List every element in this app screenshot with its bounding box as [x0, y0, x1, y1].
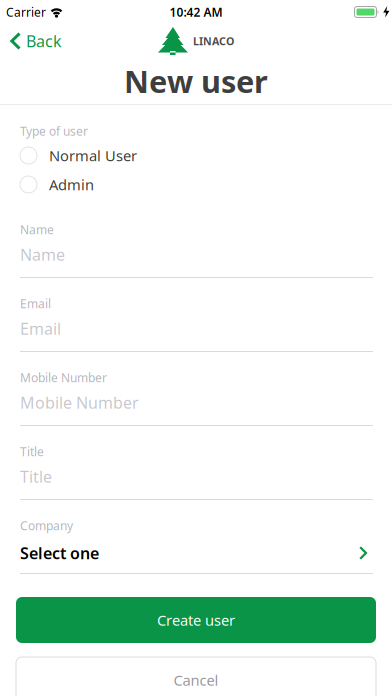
staticText: Title: [20, 466, 52, 487]
staticText: Email: [20, 318, 61, 339]
staticText: Name: [20, 221, 54, 237]
staticText: Cancel: [173, 670, 218, 690]
staticText: Mobile Number: [20, 369, 107, 385]
staticText: Type of user: [20, 123, 88, 139]
staticText: New user: [124, 61, 268, 101]
staticText: Name: [20, 244, 65, 265]
button[interactable]: Name: [20, 244, 373, 265]
staticText: Create user: [157, 610, 235, 630]
button[interactable]: Admin: [0, 170, 392, 199]
staticText: Carrier: [6, 4, 46, 20]
button[interactable]: Select one: [20, 542, 373, 564]
button[interactable]: Normal User: [0, 141, 392, 170]
button[interactable]: Title: [20, 466, 373, 487]
staticText: LINACO: [193, 34, 234, 48]
staticText: Company: [20, 517, 73, 533]
staticText: Title: [20, 443, 44, 459]
staticText: 10:42 AM: [169, 4, 222, 20]
button[interactable]: Create user: [16, 597, 376, 643]
staticText: Mobile Number: [20, 392, 139, 413]
button[interactable]: Back: [0, 30, 62, 52]
staticText: Normal User: [49, 146, 137, 165]
staticText: Select one: [20, 542, 99, 564]
staticText: Admin: [49, 175, 94, 194]
staticText: Email: [20, 295, 51, 311]
button[interactable]: Mobile Number: [20, 392, 373, 413]
button[interactable]: Cancel: [16, 657, 376, 696]
button[interactable]: Email: [20, 318, 373, 339]
staticText: Back: [26, 30, 62, 52]
